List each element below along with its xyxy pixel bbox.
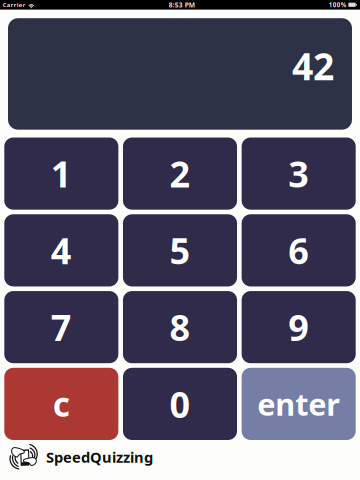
staticText: 0 (169, 380, 190, 428)
staticText: 8:53 PM (169, 0, 195, 9)
staticText: 6 (288, 226, 309, 274)
button[interactable]: 8 (123, 291, 237, 363)
staticText: 3 (288, 150, 309, 197)
staticText: enter (257, 384, 340, 424)
button[interactable]: 9 (242, 291, 356, 363)
button[interactable]: 3 (242, 137, 356, 210)
button[interactable]: 6 (242, 214, 356, 286)
staticText: 9 (288, 303, 309, 351)
staticText: SpeedQuizzing (46, 447, 153, 467)
button[interactable]: 7 (4, 291, 118, 363)
staticText: 100% (329, 1, 347, 9)
staticText: Carrier (3, 1, 26, 9)
button[interactable]: 0 (123, 368, 237, 440)
staticText: 4 (51, 226, 72, 274)
staticText: 5 (169, 226, 190, 274)
staticText: 8 (169, 303, 190, 351)
button[interactable]: 2 (123, 137, 237, 210)
button[interactable]: enter (242, 368, 356, 440)
staticText: 42 (292, 41, 334, 91)
staticText: 1 (51, 150, 72, 197)
button[interactable]: 4 (4, 214, 118, 286)
staticText: 7 (51, 303, 72, 351)
button[interactable]: c (4, 368, 118, 440)
button[interactable]: 1 (4, 137, 118, 210)
staticText: 2 (169, 150, 190, 197)
button[interactable]: 5 (123, 214, 237, 286)
staticText: c (53, 382, 70, 426)
